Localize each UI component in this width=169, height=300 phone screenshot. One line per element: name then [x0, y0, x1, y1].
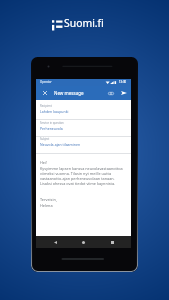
button[interactable]: Back	[50, 236, 61, 248]
staticText: Helena	[40, 203, 53, 208]
staticText: Neuvola-ajan tilaaminen	[40, 143, 81, 147]
button[interactable]: Suomi.fi	[51, 17, 117, 31]
staticText: New message	[54, 91, 84, 96]
staticText: Kysyimme lapsen kanssa neuvolavastaanott…	[40, 166, 123, 186]
staticText: Subject	[40, 138, 50, 141]
staticText: Operator	[40, 81, 52, 84]
button[interactable]: Service in question	[36, 122, 131, 131]
button[interactable]: Recipient	[36, 105, 131, 114]
button[interactable]: Home	[78, 236, 89, 248]
staticText: Terveisin,	[40, 197, 57, 202]
staticText: 13:30	[119, 81, 127, 84]
button[interactable]: Attach	[106, 86, 116, 100]
staticText: Suomi.fi	[64, 18, 104, 30]
staticText: Recipient	[40, 105, 52, 108]
button[interactable]: Subject	[36, 138, 131, 147]
button[interactable]: Recents	[107, 236, 118, 248]
button[interactable]: Close	[40, 86, 49, 100]
staticText: Hei!	[40, 160, 47, 165]
staticText: Perheneuvola	[40, 127, 63, 131]
button[interactable]: Send	[119, 86, 129, 100]
staticText: Lahden kaupunki	[40, 110, 69, 114]
staticText: Service in question	[40, 122, 64, 125]
